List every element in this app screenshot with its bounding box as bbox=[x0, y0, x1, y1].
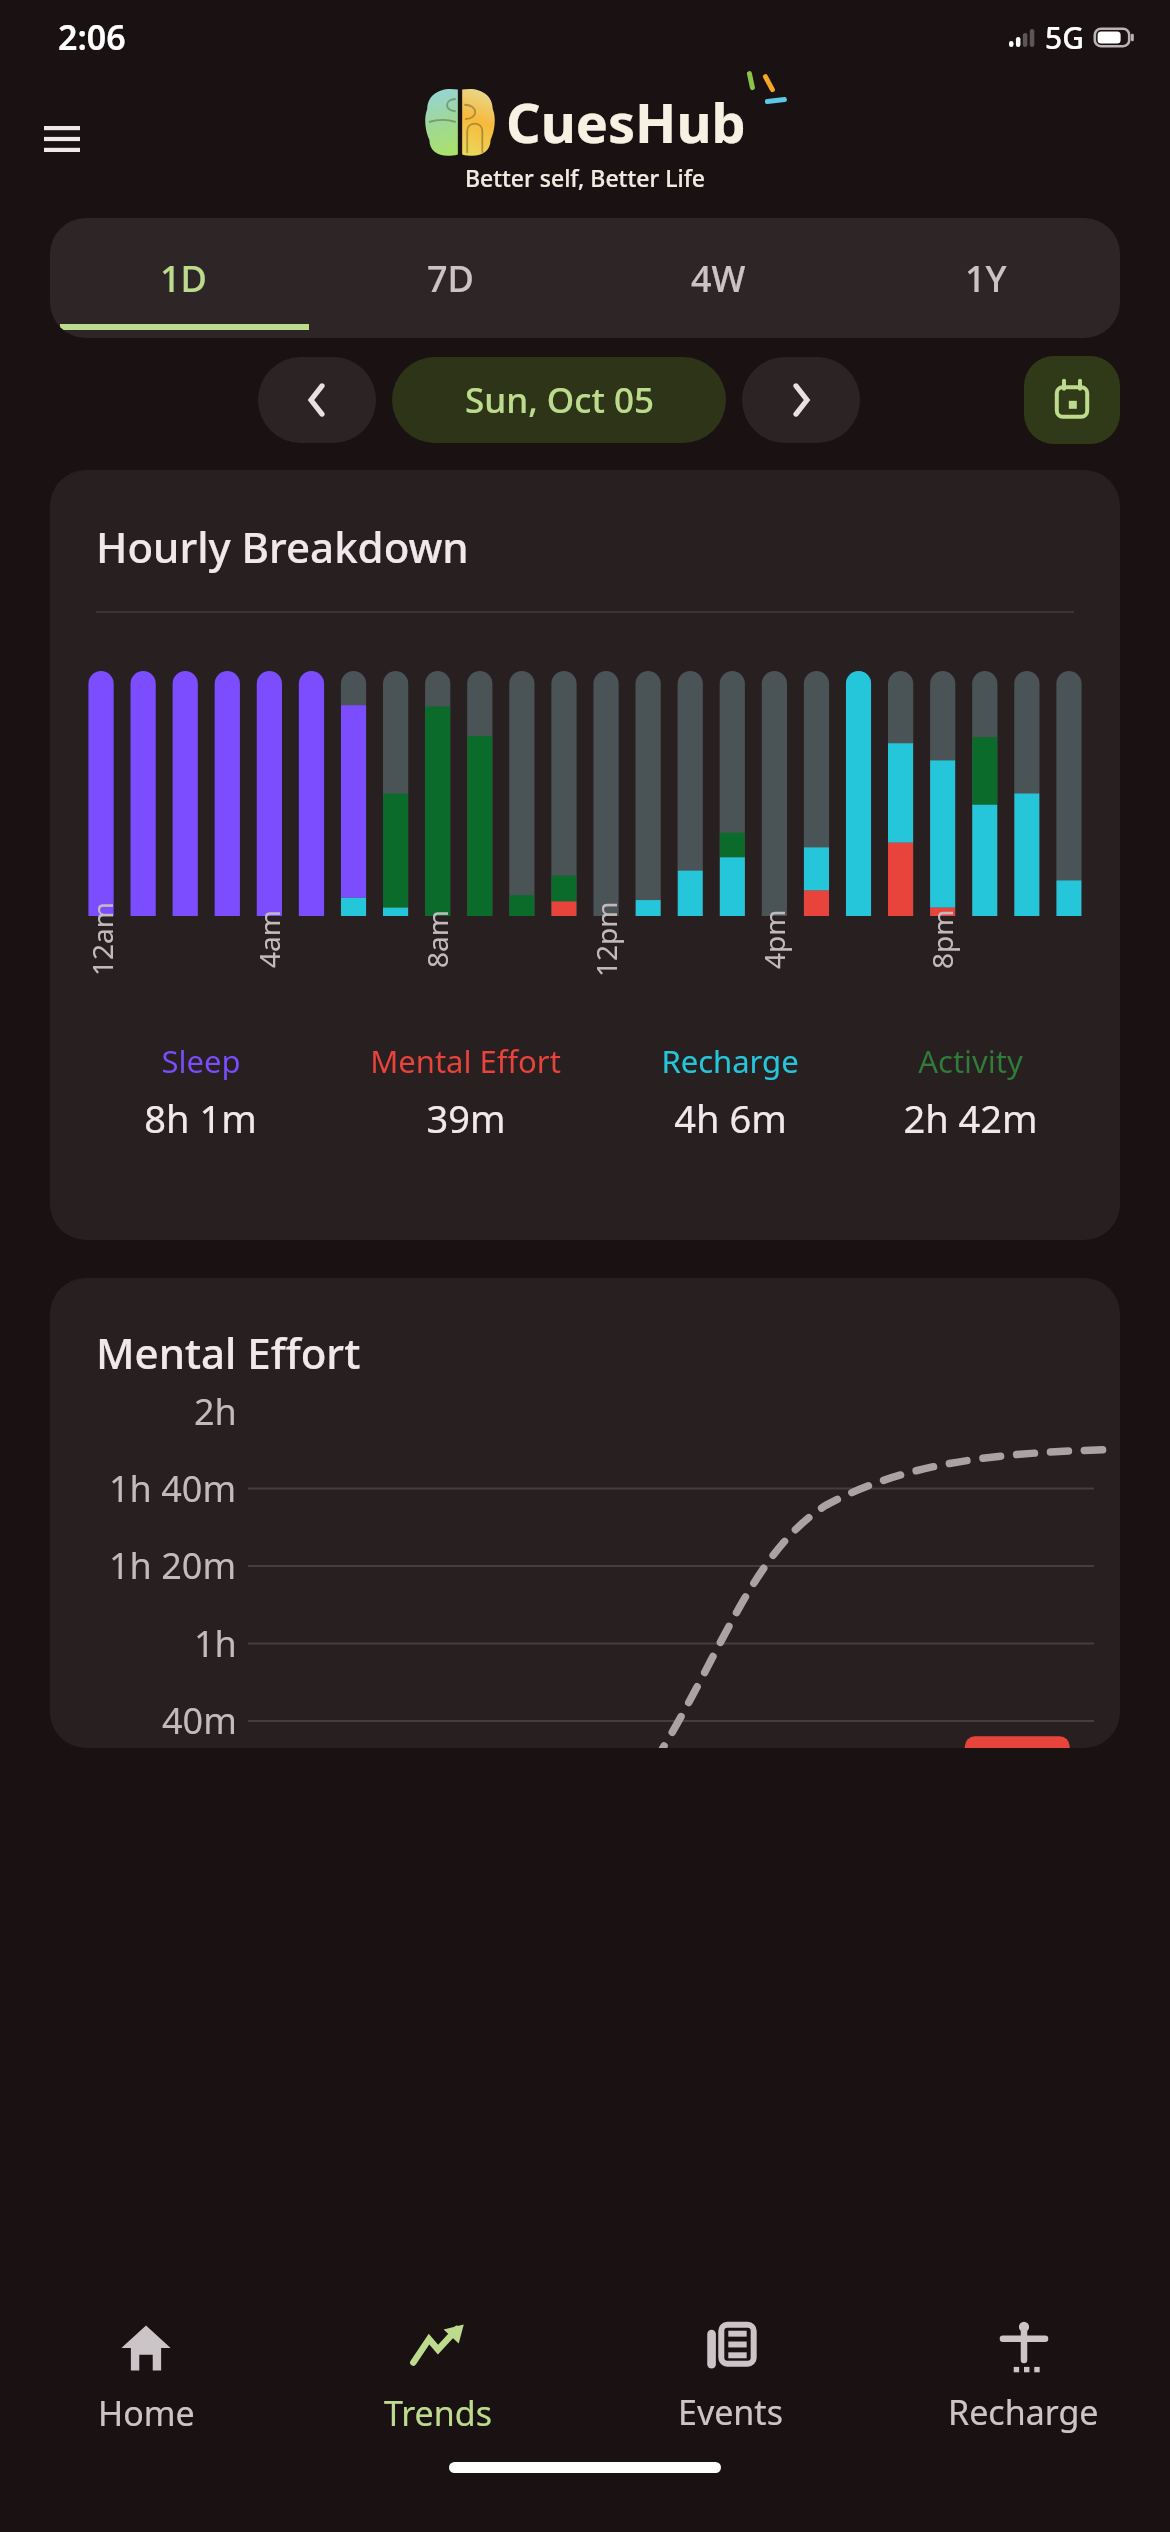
button[interactable]: Calendar bbox=[1024, 356, 1120, 444]
button[interactable]: 4W bbox=[584, 218, 852, 338]
staticText: 1h 20m bbox=[109, 1541, 237, 1590]
staticText: Events bbox=[678, 2389, 783, 2435]
staticText: Sun, Oct 05 bbox=[465, 376, 654, 424]
staticText: 7D bbox=[427, 254, 474, 303]
staticText: 4pm bbox=[755, 909, 793, 969]
button[interactable]: Menu bbox=[30, 107, 94, 171]
staticText: 39m bbox=[426, 1092, 506, 1144]
button[interactable]: 7D bbox=[317, 218, 584, 338]
staticText: 1h bbox=[194, 1619, 237, 1668]
staticText: Recharge bbox=[948, 2389, 1099, 2435]
staticText: 1h 40m bbox=[109, 1464, 237, 1513]
staticText: Recharge bbox=[661, 1040, 799, 1082]
staticText: 2:06 bbox=[58, 14, 126, 60]
staticText: 1D bbox=[160, 254, 207, 303]
button[interactable]: Sun, Oct 05 bbox=[392, 357, 726, 443]
staticText: Sleep bbox=[161, 1040, 241, 1082]
staticText: CuesHub bbox=[506, 85, 746, 159]
staticText: 4h 6m bbox=[674, 1092, 787, 1144]
staticText: 1Y bbox=[965, 254, 1007, 303]
staticText: 5G bbox=[1045, 17, 1084, 58]
staticText: 2h 42m bbox=[903, 1092, 1038, 1144]
staticText: 12am bbox=[83, 902, 121, 976]
button[interactable]: Trends bbox=[292, 2294, 584, 2462]
staticText: Home bbox=[98, 2390, 195, 2436]
button[interactable]: 1D bbox=[50, 218, 317, 338]
button[interactable]: Recharge bbox=[877, 2294, 1170, 2462]
staticText: Hourly Breakdown bbox=[96, 518, 469, 575]
staticText: 8pm bbox=[923, 909, 961, 969]
staticText: 2h bbox=[194, 1387, 237, 1436]
staticText: Activity bbox=[918, 1040, 1023, 1082]
staticText: 8am bbox=[418, 910, 456, 968]
staticText: 4W bbox=[691, 254, 746, 303]
staticText: Mental Effort bbox=[96, 1324, 361, 1381]
staticText: 12pm bbox=[587, 901, 625, 977]
button[interactable]: 1Y bbox=[852, 218, 1120, 338]
staticText: 8h 1m bbox=[144, 1092, 257, 1144]
button[interactable]: Next day bbox=[742, 357, 860, 443]
staticText: 4am bbox=[250, 910, 288, 968]
staticText: Trends bbox=[384, 2390, 492, 2436]
button[interactable]: Previous day bbox=[258, 357, 376, 443]
button[interactable]: Events bbox=[584, 2294, 877, 2462]
button[interactable]: Home bbox=[0, 2294, 292, 2462]
staticText: 40m bbox=[162, 1696, 237, 1745]
staticText: Better self, Better Life bbox=[465, 162, 706, 193]
staticText: Mental Effort bbox=[370, 1040, 561, 1082]
